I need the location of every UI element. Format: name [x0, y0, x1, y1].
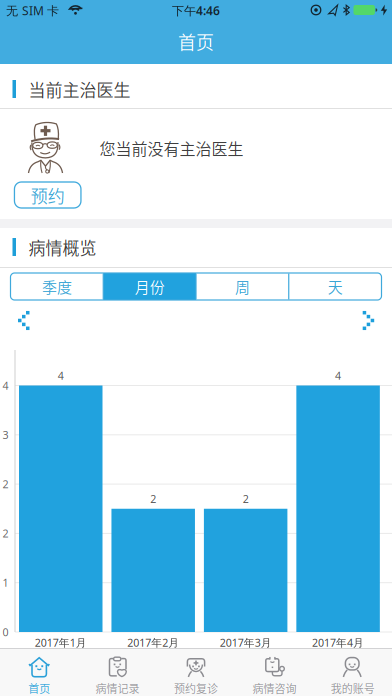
staticText: 首页 [178, 28, 214, 55]
button[interactable]: 周 [196, 273, 289, 300]
staticText: 病情咨询 [252, 680, 296, 696]
staticText: 2017年4月 [312, 635, 364, 650]
staticText: 2017年2月 [127, 635, 179, 650]
button[interactable]: 下一页 [361, 311, 374, 330]
button[interactable]: 预约复诊 [157, 648, 235, 696]
staticText: 月份 [135, 276, 165, 297]
staticText: 当前主治医生 [28, 77, 130, 101]
staticText: 下午4:46 [172, 2, 220, 18]
button[interactable]: 月份 [103, 273, 196, 300]
button[interactable]: 我的账号 [314, 648, 392, 696]
staticText: 预约 [31, 183, 65, 207]
staticText: 2017年1月 [35, 635, 87, 650]
button[interactable]: 预约 [14, 182, 81, 208]
staticText: 0 [2, 625, 8, 639]
staticText: 我的账号 [331, 680, 375, 696]
staticText: 4 [2, 378, 8, 393]
staticText: 2017年3月 [220, 635, 272, 650]
staticText: 预约复诊 [174, 680, 218, 696]
staticText: 病情记录 [96, 680, 140, 696]
staticText: 2 [243, 492, 249, 506]
button[interactable]: 上一页 [18, 311, 31, 330]
staticText: 2 [2, 526, 8, 540]
button[interactable]: 季度 [10, 273, 103, 300]
button[interactable]: 病情咨询 [235, 648, 314, 696]
staticText: 2 [2, 477, 8, 491]
staticText: 3 [2, 428, 8, 442]
staticText: 4 [58, 368, 64, 383]
staticText: 4 [335, 368, 341, 383]
staticText: 周 [235, 276, 250, 297]
staticText: 季度 [42, 276, 72, 297]
button[interactable]: 天 [289, 273, 382, 300]
staticText: 首页 [28, 680, 50, 696]
staticText: 2 [150, 492, 156, 506]
button[interactable]: 病情记录 [78, 648, 157, 696]
staticText: 病情概览 [28, 235, 96, 259]
staticText: 无 SIM 卡 [6, 2, 59, 18]
staticText: 1 [2, 576, 8, 590]
staticText: 天 [328, 276, 343, 297]
button[interactable]: 首页 [0, 648, 78, 696]
staticText: 您当前没有主治医生 [99, 136, 243, 160]
